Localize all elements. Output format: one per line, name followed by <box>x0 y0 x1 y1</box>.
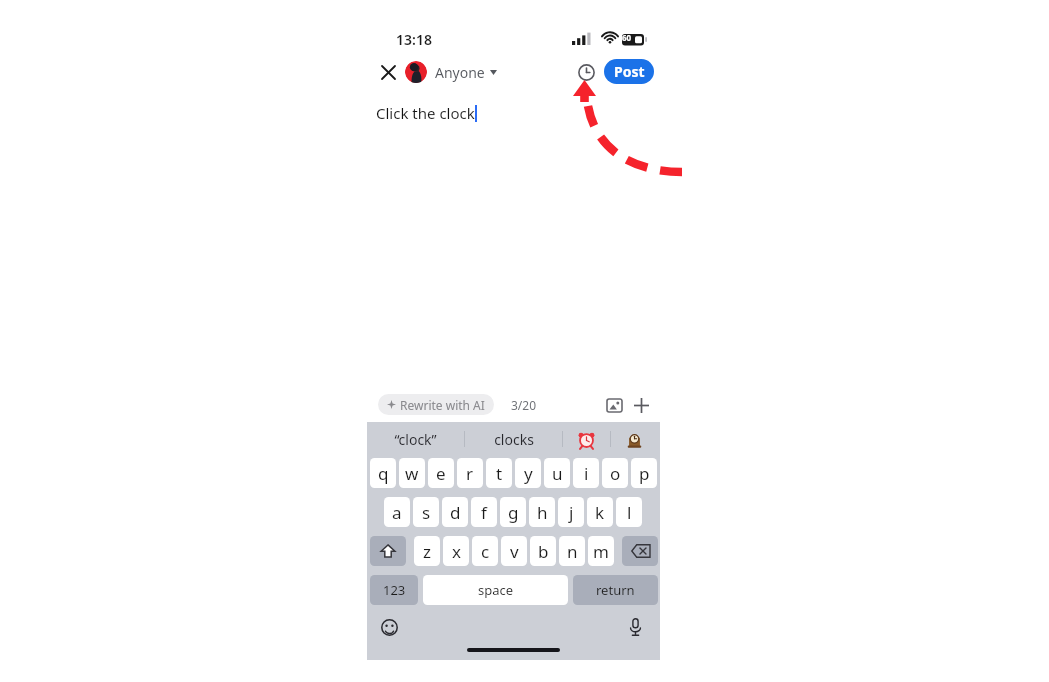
button[interactable]: f <box>471 497 497 527</box>
button[interactable]: q <box>370 458 396 488</box>
button[interactable]: j <box>558 497 584 527</box>
staticText: l <box>627 501 632 524</box>
staticText: p <box>639 462 650 485</box>
staticText: c <box>481 540 490 563</box>
staticText: q <box>378 462 389 485</box>
button[interactable]: y <box>515 458 541 488</box>
staticText: a <box>392 501 402 524</box>
button[interactable]: More options <box>630 394 652 416</box>
staticText: g <box>508 501 519 524</box>
staticText: r <box>466 462 474 485</box>
staticText: m <box>593 540 609 563</box>
staticText: b <box>538 540 549 563</box>
button[interactable]: z <box>414 536 440 566</box>
staticText: 3/20 <box>511 397 537 413</box>
button[interactable]: m <box>588 536 614 566</box>
button[interactable]: Post <box>604 59 654 84</box>
button[interactable]: e <box>428 458 454 488</box>
button[interactable]: k <box>587 497 613 527</box>
button[interactable]: s <box>413 497 439 527</box>
button[interactable]: Shift <box>370 536 406 566</box>
button[interactable]: Mantel clock emoji <box>611 422 658 456</box>
staticText: Rewrite with AI <box>400 397 485 413</box>
button[interactable]: c <box>472 536 498 566</box>
button[interactable]: r <box>457 458 483 488</box>
button[interactable]: Anyone <box>405 57 497 87</box>
staticText: space <box>478 581 514 599</box>
button[interactable]: o <box>602 458 628 488</box>
staticText: Anyone <box>435 63 485 82</box>
staticText: y <box>524 462 533 485</box>
staticText: 123 <box>383 581 406 599</box>
staticText: s <box>422 501 431 524</box>
button[interactable]: n <box>559 536 585 566</box>
staticText: 13:18 <box>396 30 432 49</box>
button[interactable]: Close <box>376 60 400 84</box>
staticText: u <box>552 462 563 485</box>
button[interactable]: return <box>573 575 658 605</box>
staticText: i <box>584 462 589 485</box>
staticText: j <box>569 501 574 524</box>
staticText: return <box>596 581 635 599</box>
button[interactable]: space <box>423 575 568 605</box>
button[interactable]: Emoji <box>376 614 402 640</box>
staticText: n <box>567 540 578 563</box>
button[interactable]: l <box>616 497 642 527</box>
button[interactable]: clocks <box>465 422 562 456</box>
button[interactable]: v <box>501 536 527 566</box>
button[interactable]: w <box>399 458 425 488</box>
staticText: h <box>537 501 548 524</box>
staticText: x <box>452 540 461 563</box>
button[interactable]: x <box>443 536 469 566</box>
staticText: k <box>595 501 605 524</box>
button[interactable]: Rewrite with AI <box>378 394 494 415</box>
button[interactable]: t <box>486 458 512 488</box>
button[interactable]: 123 <box>370 575 418 605</box>
button[interactable]: i <box>573 458 599 488</box>
staticText: v <box>510 540 519 563</box>
button[interactable]: Backspace <box>622 536 658 566</box>
staticText: e <box>436 462 446 485</box>
button[interactable]: b <box>530 536 556 566</box>
staticText: “clock” <box>394 430 437 449</box>
staticText: w <box>405 462 419 485</box>
button[interactable]: Alarm clock emoji <box>563 422 610 456</box>
button[interactable]: Dictation <box>622 614 648 640</box>
button[interactable]: “clock” <box>367 422 464 456</box>
button[interactable]: u <box>544 458 570 488</box>
button[interactable]: a <box>384 497 410 527</box>
button[interactable]: h <box>529 497 555 527</box>
button[interactable]: g <box>500 497 526 527</box>
staticText: Post <box>614 62 645 81</box>
button[interactable]: d <box>442 497 468 527</box>
staticText: t <box>496 462 503 485</box>
staticText: Click the clock <box>376 103 475 123</box>
staticText: clocks <box>494 430 534 449</box>
button[interactable]: Add image <box>603 394 625 416</box>
staticText: 60 <box>622 32 632 43</box>
staticText: f <box>481 501 487 524</box>
button[interactable]: Schedule post <box>573 59 599 85</box>
staticText: o <box>610 462 621 485</box>
staticText: z <box>423 540 431 563</box>
button[interactable]: p <box>631 458 657 488</box>
staticText: d <box>450 501 461 524</box>
